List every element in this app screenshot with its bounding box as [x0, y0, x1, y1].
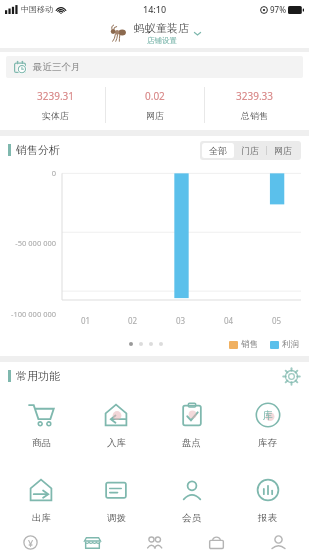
staticText: 入库: [107, 437, 126, 449]
staticText: 01: [81, 315, 91, 326]
staticText: 04: [224, 315, 234, 326]
staticText: 全部: [209, 145, 227, 156]
staticText: 02: [128, 315, 138, 326]
button[interactable]: 库: [232, 390, 303, 460]
staticText: -100 000 000: [0, 309, 56, 319]
button[interactable]: 找客户: [123, 535, 185, 550]
staticText: 调拨: [107, 512, 126, 524]
staticText: 网店: [274, 145, 292, 156]
staticText: 14:10: [143, 3, 167, 15]
staticText: 出库: [32, 512, 51, 524]
staticText: 报表: [258, 512, 277, 524]
button[interactable]: 我的: [247, 535, 309, 550]
staticText: 最近三个月: [33, 61, 81, 73]
button[interactable]: 蚂蚁童装店: [103, 20, 206, 46]
staticText: 网店: [146, 110, 164, 121]
button[interactable]: 盘点: [156, 390, 227, 460]
button[interactable]: 最近三个月: [6, 56, 303, 78]
staticText: 实体店: [42, 110, 69, 121]
staticText: 会员: [182, 512, 201, 524]
staticText: 05: [272, 315, 282, 326]
button[interactable]: 设置: [281, 366, 301, 386]
staticText: 中国移动: [21, 4, 53, 14]
staticText: 盘点: [182, 437, 201, 449]
staticText: 库存: [258, 437, 277, 449]
button[interactable]: 全部: [202, 143, 234, 158]
staticText: 3239.31: [37, 89, 74, 103]
button[interactable]: ¥: [0, 535, 61, 550]
button[interactable]: 0.02: [106, 86, 204, 124]
button[interactable]: 商品: [6, 390, 76, 460]
staticText: 商品: [32, 437, 51, 449]
button[interactable]: 出库: [6, 465, 76, 535]
button[interactable]: 会员: [156, 465, 227, 535]
staticText: 3239.33: [236, 89, 273, 103]
button[interactable]: 管店: [61, 535, 123, 550]
staticText: 销售: [241, 339, 258, 350]
button[interactable]: 报表: [232, 465, 303, 535]
staticText: 常用功能: [16, 369, 60, 383]
button[interactable]: 门店: [234, 143, 266, 158]
button[interactable]: 3239.31: [6, 86, 105, 124]
staticText: 销售分析: [16, 143, 60, 157]
button[interactable]: 网店: [185, 535, 247, 550]
staticText: 0: [0, 168, 56, 178]
staticText: 利润: [282, 339, 299, 350]
staticText: 0.02: [145, 89, 165, 103]
staticText: ¥: [28, 537, 34, 549]
button[interactable]: 调拨: [81, 465, 151, 535]
button[interactable]: 入库: [81, 390, 151, 460]
staticText: 店铺设置: [147, 36, 177, 45]
staticText: 门店: [241, 145, 259, 156]
staticText: 库: [263, 409, 273, 422]
staticText: 总销售: [241, 110, 268, 121]
button[interactable]: 网店: [267, 143, 299, 158]
staticText: 03: [176, 315, 186, 326]
staticText: 蚂蚁童装店: [134, 21, 189, 35]
staticText: 97%: [270, 4, 286, 15]
button[interactable]: 3239.33: [205, 86, 303, 124]
staticText: -50 000 000: [0, 238, 56, 248]
